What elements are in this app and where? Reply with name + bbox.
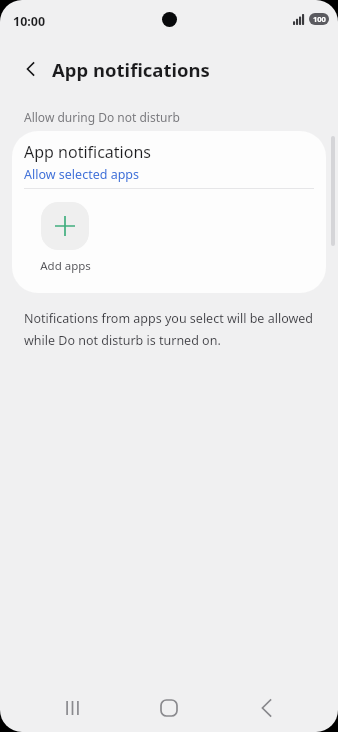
staticText: Add apps — [40, 258, 91, 274]
staticText: 10:00 — [13, 13, 46, 30]
button[interactable]: Back — [246, 688, 286, 728]
staticText: Notifications from apps you select will … — [24, 310, 314, 327]
staticText: Allow selected apps — [24, 166, 140, 183]
staticText: App notifications — [24, 141, 151, 163]
button[interactable]: App notifications — [12, 131, 326, 188]
staticText: while Do not disturb is turned on. — [24, 332, 221, 349]
staticText: App notifications — [52, 57, 210, 82]
staticText: Allow during Do not disturb — [24, 109, 180, 125]
button[interactable]: Add apps — [37, 202, 93, 274]
staticText: 100 — [313, 14, 326, 24]
button[interactable]: Back — [16, 54, 46, 84]
button[interactable]: Home — [149, 688, 189, 728]
button[interactable]: Recent apps — [52, 688, 92, 728]
